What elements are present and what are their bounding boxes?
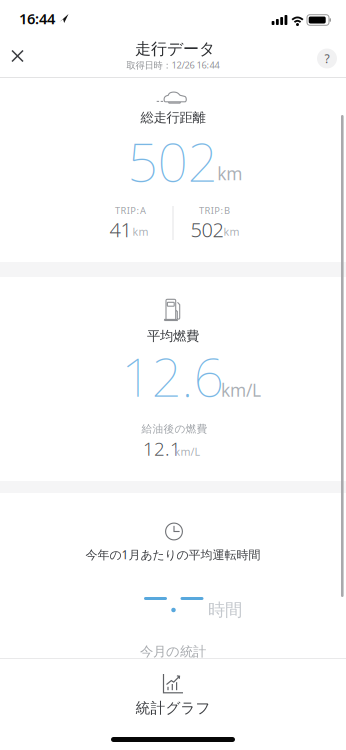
staticText: 16:44 — [19, 9, 55, 28]
staticText: km — [132, 224, 148, 239]
staticText: 今年の1月あたりの平均運転時間 — [85, 546, 260, 562]
staticText: 502 — [127, 126, 217, 196]
staticText: ? — [324, 50, 329, 66]
staticText: km — [223, 224, 239, 239]
staticText: km/L — [221, 378, 261, 401]
button[interactable]: Close — [5, 43, 30, 68]
staticText: 41 — [109, 216, 131, 243]
staticText: 平均燃費 — [147, 328, 199, 344]
staticText: 総走行距離 — [140, 109, 205, 126]
staticText: km/L — [174, 444, 200, 459]
staticText: 12.1 — [143, 436, 181, 461]
staticText: 給油後の燃費 — [141, 422, 207, 435]
staticText: 走行データ — [135, 39, 215, 59]
button[interactable]: 統計グラフ — [0, 662, 346, 728]
staticText: 統計グラフ — [135, 699, 210, 717]
staticText: TRIP:B — [199, 204, 230, 217]
staticText: 取得日時：12/26 16:44 — [126, 59, 219, 71]
staticText: TRIP:A — [115, 204, 146, 217]
staticText: 今月の統計 — [140, 643, 206, 660]
staticText: 502 — [190, 216, 223, 243]
button[interactable]: Help — [315, 46, 339, 70]
staticText: 12.6 — [121, 341, 223, 411]
staticText: km — [217, 162, 242, 185]
staticText: 時間 — [208, 599, 242, 621]
